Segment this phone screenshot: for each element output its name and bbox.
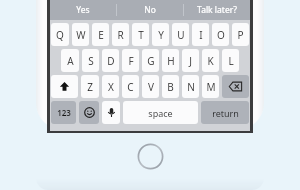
button[interactable]: W (72, 23, 89, 46)
staticText: V (148, 80, 154, 94)
staticText: B (167, 80, 174, 94)
staticText: R (117, 28, 124, 42)
staticText: Y (158, 28, 164, 42)
staticText: Talk later? (197, 4, 237, 16)
staticText: space (148, 107, 173, 119)
staticText: H (167, 54, 175, 68)
button[interactable]: O (212, 23, 229, 46)
button[interactable]: return (201, 101, 249, 124)
button[interactable]: S (82, 49, 99, 72)
staticText: Yes (76, 4, 90, 16)
staticText: F (128, 54, 134, 68)
staticText: O (217, 28, 225, 42)
button[interactable]: Y (152, 23, 169, 46)
button[interactable]: Emoji (79, 101, 99, 124)
button[interactable]: E (92, 23, 109, 46)
button[interactable]: B (162, 75, 179, 98)
staticText: K (207, 54, 214, 68)
button[interactable]: Z (81, 75, 99, 98)
button[interactable]: N (182, 75, 199, 98)
staticText: Z (87, 80, 93, 94)
staticText: W (76, 28, 86, 42)
staticText: M (206, 80, 216, 94)
button[interactable]: T (132, 23, 149, 46)
button[interactable]: L (222, 49, 239, 72)
button[interactable]: Talk later? (184, 0, 250, 20)
button[interactable]: Home (137, 143, 164, 170)
staticText: U (177, 28, 185, 42)
button[interactable]: A (61, 49, 79, 72)
staticText: S (88, 54, 94, 68)
button[interactable]: No (117, 0, 183, 20)
button[interactable]: Backspace (222, 75, 249, 98)
staticText: P (237, 28, 244, 42)
staticText: return (212, 107, 239, 119)
button[interactable]: H (162, 49, 179, 72)
button[interactable]: Yes (50, 0, 116, 20)
button[interactable]: F (122, 49, 139, 72)
staticText: C (127, 80, 134, 94)
button[interactable]: K (202, 49, 219, 72)
button[interactable]: Q (51, 23, 69, 46)
staticText: X (108, 80, 114, 94)
button[interactable]: C (122, 75, 139, 98)
staticText: N (187, 80, 195, 94)
staticText: E (98, 28, 104, 42)
button[interactable]: 123 (51, 101, 76, 124)
button[interactable]: U (172, 23, 189, 46)
button[interactable]: Shift (51, 75, 78, 98)
button[interactable]: P (232, 23, 249, 46)
staticText: L (228, 54, 234, 68)
button[interactable]: G (142, 49, 159, 72)
staticText: No (144, 4, 156, 16)
staticText: A (67, 54, 74, 68)
button[interactable]: D (102, 49, 119, 72)
staticText: Q (56, 28, 64, 42)
staticText: J (189, 54, 192, 68)
button[interactable]: V (142, 75, 159, 98)
button[interactable]: M (202, 75, 219, 98)
staticText: I (199, 28, 203, 42)
button[interactable]: Dictate (102, 101, 120, 124)
staticText: T (138, 28, 144, 42)
staticText: G (147, 54, 155, 68)
staticText: 123 (57, 107, 71, 118)
button[interactable]: J (182, 49, 199, 72)
staticText: D (107, 54, 115, 68)
button[interactable]: R (112, 23, 129, 46)
button[interactable]: I (192, 23, 209, 46)
button[interactable]: space (123, 101, 198, 124)
button[interactable]: X (102, 75, 119, 98)
